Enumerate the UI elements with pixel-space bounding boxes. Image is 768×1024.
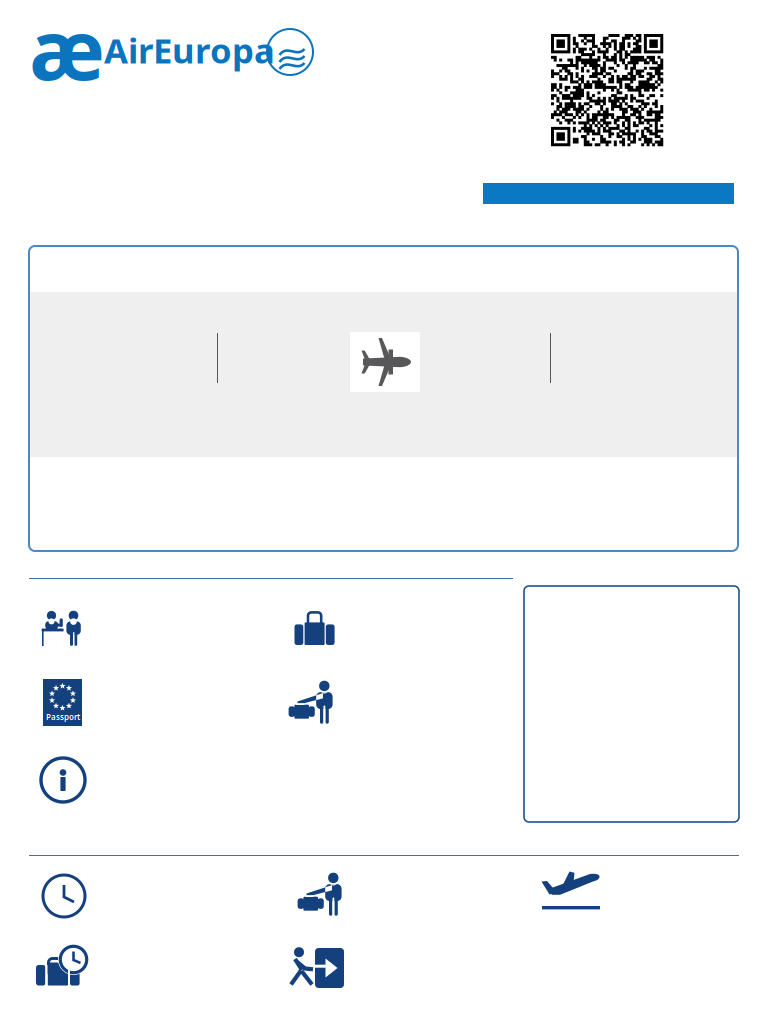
staticText: æ (29, 0, 105, 103)
staticText: AirEuropa (104, 27, 275, 73)
staticText: Passport (46, 712, 80, 722)
